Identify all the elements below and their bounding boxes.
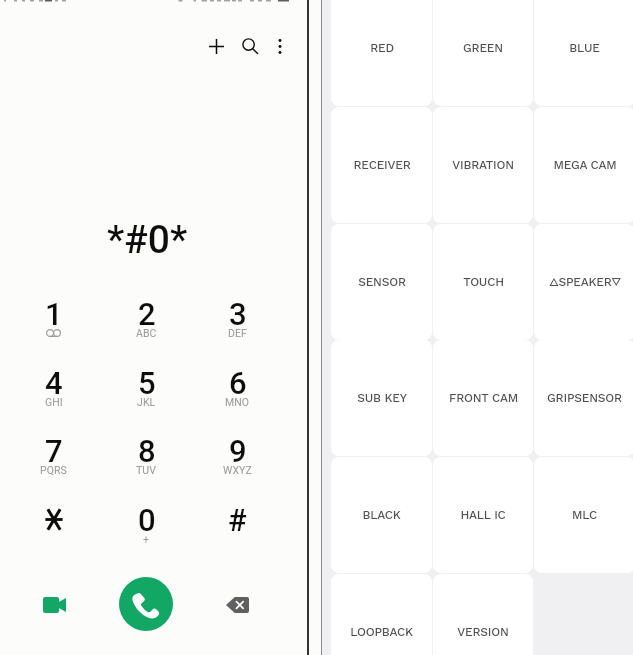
staticText: GHI: [45, 396, 63, 408]
staticText: MNO: [225, 396, 250, 408]
staticText: 5: [138, 365, 156, 399]
button[interactable]: TOUCH: [433, 224, 533, 340]
staticText: MLC: [572, 508, 597, 522]
button[interactable]: VIBRATION: [433, 107, 533, 223]
staticText: *#0*: [107, 217, 188, 263]
button[interactable]: 0: [101, 490, 192, 559]
button[interactable]: 7: [8, 421, 99, 490]
staticText: GRIPSENSOR: [547, 391, 622, 405]
staticText: TUV: [136, 464, 157, 476]
staticText: BLUE: [569, 41, 600, 55]
staticText: BLACK: [362, 508, 401, 522]
button[interactable]: MEGA CAM: [534, 107, 633, 223]
button[interactable]: #: [192, 490, 283, 559]
button[interactable]: BLUE: [534, 0, 633, 106]
staticText: 3: [229, 296, 247, 330]
staticText: FRONT CAM: [449, 391, 518, 405]
staticText: WXYZ: [223, 464, 252, 476]
staticText: △SPEAKER▽: [549, 275, 621, 289]
button[interactable]: SUB KEY: [331, 340, 432, 456]
staticText: HALL IC: [460, 508, 506, 522]
staticText: 4: [45, 365, 63, 399]
button[interactable]: [8, 490, 99, 559]
button[interactable]: VERSION: [433, 574, 533, 655]
staticText: GREEN: [463, 41, 503, 55]
staticText: TOUCH: [463, 275, 504, 289]
button[interactable]: 4: [8, 353, 99, 422]
button[interactable]: △SPEAKER▽: [534, 224, 633, 340]
staticText: LOOPBACK: [350, 625, 413, 639]
staticText: JKL: [137, 396, 156, 408]
button[interactable]: *#0*: [47, 212, 247, 268]
staticText: RED: [370, 41, 394, 55]
button[interactable]: Call: [119, 577, 173, 631]
button[interactable]: BLACK: [331, 457, 432, 573]
button[interactable]: RED: [331, 0, 432, 106]
button[interactable]: HALL IC: [433, 457, 533, 573]
staticText: 2: [138, 296, 156, 330]
button[interactable]: RECEIVER: [331, 107, 432, 223]
staticText: DEF: [228, 327, 247, 339]
staticText: #: [228, 502, 247, 536]
staticText: 0: [138, 502, 156, 536]
button[interactable]: MLC: [534, 457, 633, 573]
button[interactable]: Search: [230, 26, 270, 66]
button[interactable]: SENSOR: [331, 224, 432, 340]
staticText: MEGA CAM: [553, 158, 617, 172]
staticText: 1: [45, 296, 63, 330]
staticText: 9: [229, 433, 247, 467]
staticText: VIBRATION: [452, 158, 514, 172]
staticText: +: [143, 533, 150, 545]
button[interactable]: GREEN: [433, 0, 533, 106]
button[interactable]: FRONT CAM: [433, 340, 533, 456]
staticText: 7: [45, 433, 63, 467]
button[interactable]: 9: [192, 421, 283, 490]
staticText: SENSOR: [358, 275, 406, 289]
button[interactable]: Video call: [31, 581, 78, 628]
button[interactable]: 8: [101, 421, 192, 490]
staticText: SUB KEY: [357, 391, 407, 405]
staticText: 8: [138, 433, 156, 467]
button[interactable]: 3: [192, 284, 283, 353]
button[interactable]: LOOPBACK: [331, 574, 432, 655]
staticText: 6: [229, 365, 247, 399]
button[interactable]: Add contact: [196, 26, 236, 66]
button[interactable]: 5: [101, 353, 192, 422]
staticText: VERSION: [457, 625, 509, 639]
button[interactable]: 2: [101, 284, 192, 353]
staticText: ABC: [136, 327, 157, 339]
staticText: PQRS: [40, 464, 67, 476]
button[interactable]: 6: [192, 353, 283, 422]
button[interactable]: 1: [8, 284, 99, 353]
button[interactable]: More options: [260, 26, 300, 66]
button[interactable]: GRIPSENSOR: [534, 340, 633, 456]
button[interactable]: Backspace: [214, 581, 261, 628]
staticText: RECEIVER: [353, 158, 411, 172]
